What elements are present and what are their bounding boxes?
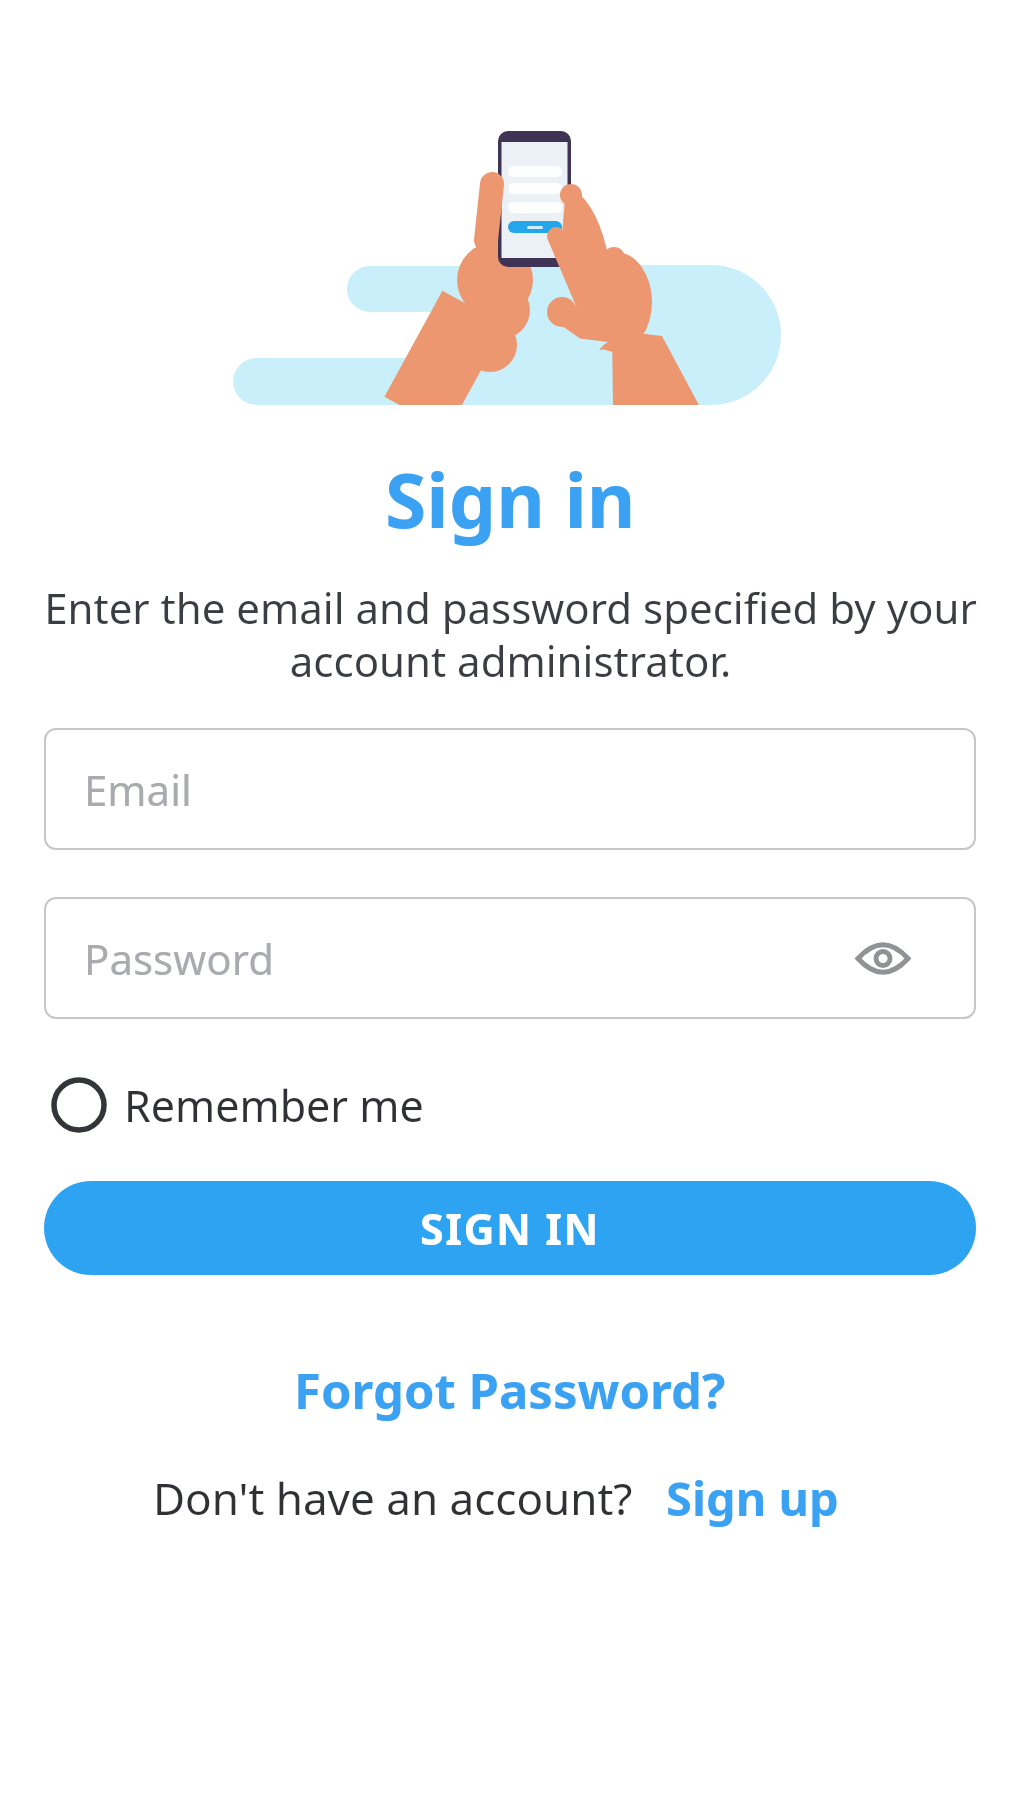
staticText: Remember me [124,1076,424,1135]
staticText: Email [84,761,192,818]
button[interactable]: Remember me [50,1070,424,1140]
button[interactable]: Forgot Password? [294,1357,726,1424]
staticText: Password [84,930,274,987]
staticText: SIGN IN [420,1199,600,1258]
button[interactable]: Password [44,897,976,1019]
staticText: Don't have an account? [153,1468,633,1528]
button[interactable]: Email [44,728,976,850]
button[interactable] [856,938,910,979]
staticText: Enter the email and password specified b… [44,579,977,689]
button[interactable]: Sign up [666,1466,839,1530]
staticText: Sign in [385,448,636,550]
button[interactable]: SIGN IN [44,1181,976,1275]
